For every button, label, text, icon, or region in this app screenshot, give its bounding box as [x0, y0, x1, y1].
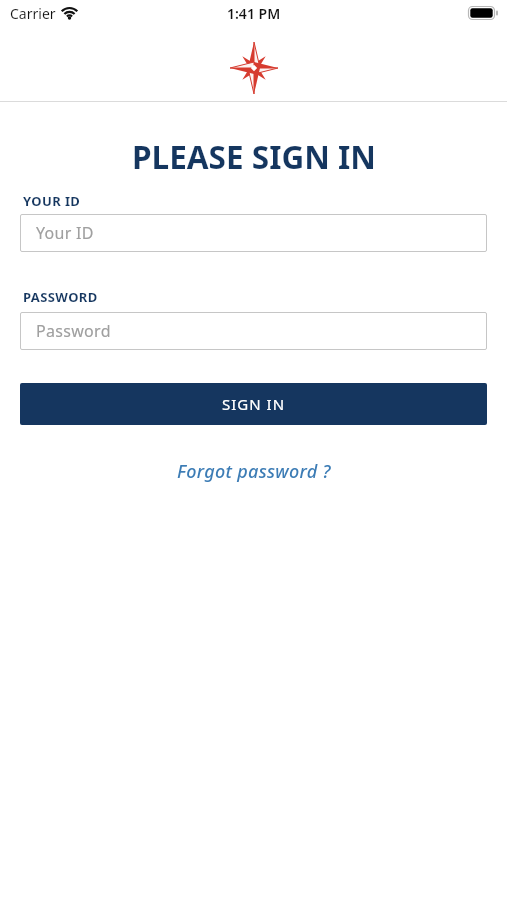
staticText: SIGN IN [222, 394, 286, 414]
button[interactable]: Forgot password ? [173, 455, 335, 488]
button[interactable]: Password [20, 312, 487, 350]
button[interactable]: Your ID [20, 214, 487, 252]
staticText: Carrier [10, 4, 56, 23]
staticText: PLEASE SIGN IN [132, 135, 376, 178]
button[interactable]: SIGN IN [20, 383, 487, 425]
staticText: 1:41 PM [227, 4, 281, 23]
staticText: Your ID [36, 222, 94, 244]
staticText: PASSWORD [23, 288, 98, 306]
staticText: Password [36, 320, 111, 342]
staticText: YOUR ID [23, 192, 81, 210]
